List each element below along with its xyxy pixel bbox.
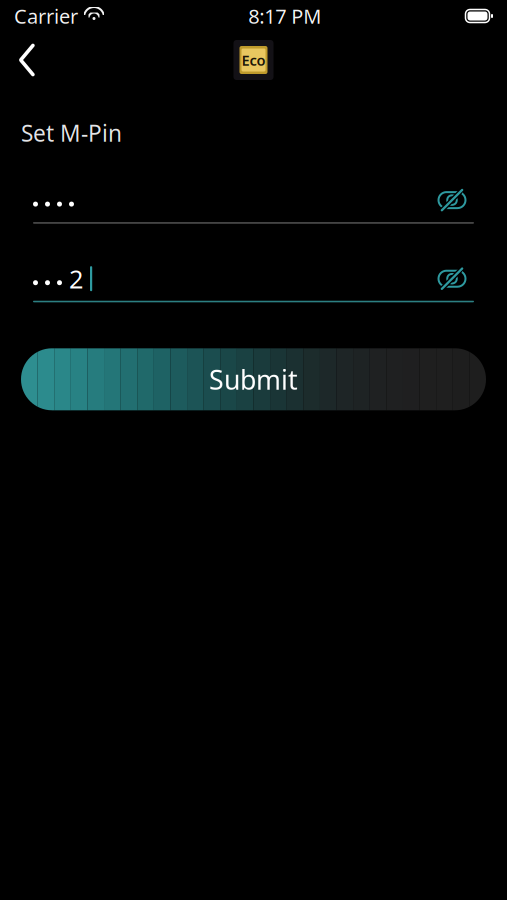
- button[interactable]: Back: [0, 35, 54, 85]
- button[interactable]: Submit: [21, 348, 486, 410]
- button[interactable]: Show confirm M-Pin: [430, 258, 474, 300]
- staticText: Carrier: [14, 3, 78, 29]
- staticText: Set M-Pin: [21, 118, 122, 148]
- button[interactable]: Show M-Pin: [430, 179, 474, 221]
- staticText: 2: [69, 262, 83, 295]
- staticText: Eco: [241, 50, 265, 70]
- staticText: 8:17 PM: [248, 3, 321, 29]
- staticText: Submit: [209, 362, 298, 397]
